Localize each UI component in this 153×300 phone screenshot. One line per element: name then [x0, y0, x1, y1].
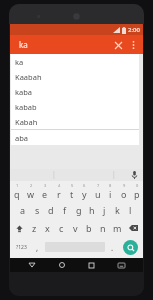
button[interactable]: Back: [25, 258, 39, 272]
button[interactable]: m: [110, 219, 124, 237]
button[interactable]: Kabah: [11, 114, 139, 129]
staticText: ?123: [16, 244, 27, 251]
staticText: i: [109, 188, 112, 200]
staticText: Kaabah: [15, 72, 42, 82]
button[interactable]: v: [68, 219, 82, 237]
staticText: 5: [71, 183, 74, 188]
button[interactable]: l: [124, 201, 137, 219]
button[interactable]: 0: [130, 182, 143, 201]
button[interactable]: 1: [10, 182, 24, 201]
button[interactable]: 3: [38, 182, 52, 201]
button[interactable]: 4: [52, 182, 65, 201]
staticText: k: [115, 204, 120, 216]
button[interactable]: More options: [126, 38, 140, 52]
button[interactable]: Clear search: [110, 37, 126, 53]
staticText: 9: [123, 183, 126, 188]
staticText: g: [76, 204, 82, 216]
button[interactable]: 2: [24, 182, 38, 201]
staticText: kabab: [15, 102, 37, 112]
staticText: m: [113, 222, 122, 234]
button[interactable]: Search: [123, 240, 138, 255]
staticText: 4: [58, 183, 61, 188]
button[interactable]: 5: [65, 182, 78, 201]
button[interactable]: Shift: [10, 219, 28, 237]
staticText: p: [134, 188, 140, 200]
staticText: u: [95, 188, 101, 200]
button[interactable]: ,: [32, 237, 43, 257]
staticText: ,: [36, 242, 39, 253]
button[interactable]: 7: [91, 182, 104, 201]
button[interactable]: ?123: [10, 237, 32, 257]
staticText: aba: [15, 133, 29, 143]
button[interactable]: Kaabah: [11, 69, 139, 84]
button[interactable]: k: [111, 201, 124, 219]
button[interactable]: z: [28, 219, 41, 237]
staticText: h: [89, 204, 95, 216]
button[interactable]: a: [16, 201, 30, 219]
button[interactable]: ka: [11, 54, 139, 69]
button[interactable]: aba: [11, 130, 139, 145]
button[interactable]: s: [30, 201, 44, 219]
staticText: q: [14, 188, 20, 200]
staticText: 3: [44, 183, 47, 188]
button[interactable]: kabab: [11, 99, 139, 114]
staticText: a: [20, 204, 26, 216]
button[interactable]: d: [44, 201, 58, 219]
staticText: 7: [97, 183, 100, 188]
staticText: 2:00: [128, 26, 140, 34]
staticText: kaba: [15, 87, 33, 97]
button[interactable]: Voice input: [129, 170, 139, 180]
button[interactable]: Recents: [84, 258, 98, 272]
staticText: y: [82, 188, 87, 200]
button[interactable]: c: [54, 219, 68, 237]
staticText: c: [59, 222, 64, 234]
staticText: 2: [30, 183, 33, 188]
staticText: d: [48, 204, 54, 216]
staticText: 0: [136, 183, 139, 188]
staticText: 8: [109, 183, 112, 188]
staticText: b: [86, 222, 92, 234]
button[interactable]: x: [41, 219, 54, 237]
button[interactable]: Hide keyboard: [114, 258, 128, 272]
staticText: Kabah: [15, 117, 38, 127]
button[interactable]: Home: [55, 258, 69, 272]
button[interactable]: b: [82, 219, 96, 237]
staticText: f: [63, 204, 67, 216]
button[interactable]: 9: [117, 182, 130, 201]
staticText: .: [111, 242, 114, 253]
button[interactable]: Backspace: [124, 219, 143, 237]
button[interactable]: g: [72, 201, 85, 219]
button[interactable]: 8: [104, 182, 117, 201]
staticText: z: [32, 222, 37, 234]
button[interactable]: j: [98, 201, 111, 219]
staticText: 6: [83, 183, 86, 188]
staticText: ka: [19, 39, 28, 50]
staticText: v: [73, 222, 78, 234]
staticText: s: [35, 204, 40, 216]
staticText: 1: [16, 183, 19, 188]
button[interactable]: n: [96, 219, 110, 237]
staticText: ka: [15, 57, 24, 67]
staticText: r: [57, 188, 61, 200]
button[interactable]: f: [58, 201, 72, 219]
staticText: j: [103, 204, 106, 216]
staticText: n: [100, 222, 106, 234]
staticText: o: [121, 188, 127, 200]
button[interactable]: 6: [78, 182, 91, 201]
staticText: l: [129, 204, 132, 216]
button[interactable]: kaba: [11, 84, 139, 99]
staticText: w: [27, 188, 35, 200]
staticText: x: [45, 222, 50, 234]
button[interactable]: .: [107, 237, 118, 257]
button[interactable]: h: [85, 201, 98, 219]
staticText: t: [70, 188, 74, 200]
staticText: e: [42, 188, 48, 200]
